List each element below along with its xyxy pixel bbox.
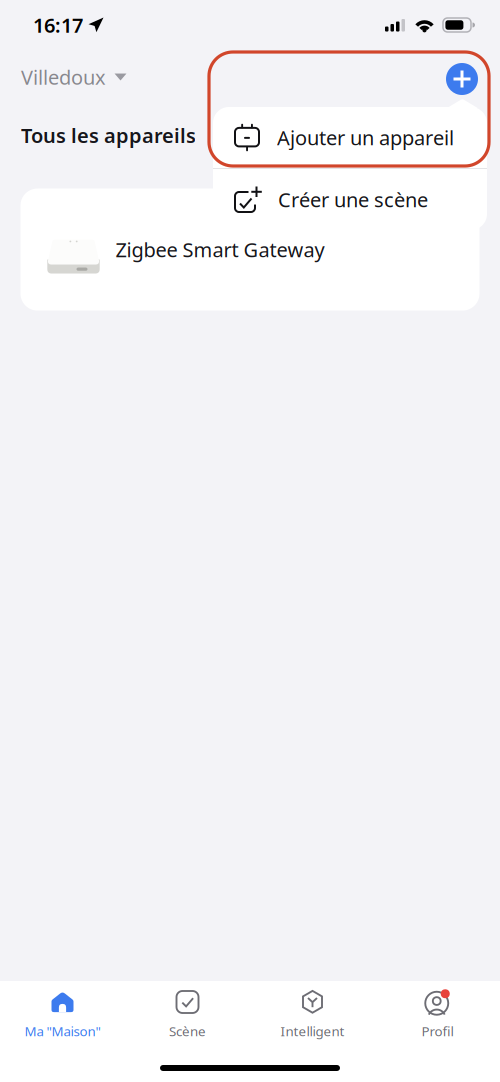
button[interactable]: Villedoux bbox=[21, 62, 127, 92]
staticText: Ma "Maison" bbox=[24, 1022, 100, 1040]
button[interactable]: Ajouter bbox=[446, 63, 478, 95]
staticText: Zigbee Smart Gateway bbox=[115, 236, 324, 263]
staticText: 16:17 bbox=[33, 12, 83, 38]
button[interactable]: Créer une scène bbox=[213, 169, 487, 230]
staticText: Scène bbox=[169, 1022, 206, 1040]
button[interactable]: Scène bbox=[125, 981, 250, 1043]
staticText: Ajouter un appareil bbox=[277, 124, 454, 151]
button[interactable]: Ajouter un appareil bbox=[213, 107, 487, 168]
button[interactable]: Ma "Maison" bbox=[0, 981, 125, 1043]
button[interactable]: Zigbee Smart Gateway bbox=[20, 189, 479, 311]
staticText: Créer une scène bbox=[278, 186, 428, 213]
staticText: Villedoux bbox=[21, 64, 106, 90]
button[interactable]: Profil bbox=[375, 981, 500, 1043]
button[interactable]: Intelligent bbox=[250, 981, 375, 1043]
staticText: Intelligent bbox=[280, 1022, 344, 1040]
staticText: Tous les appareils bbox=[21, 122, 196, 149]
staticText: Profil bbox=[421, 1022, 453, 1040]
